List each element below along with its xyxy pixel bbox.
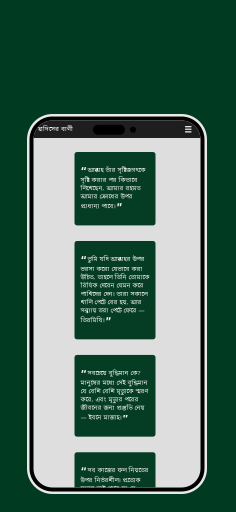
staticText: “ আল্লাহ তাঁর সৃষ্টিজগৎকে সৃষ্টি করার পর…	[80, 165, 145, 212]
button[interactable]: Menu	[183, 124, 193, 134]
staticText: “ সব কাজের ফল নিয়তের উপর নির্ভরশীল। প্র…	[80, 465, 148, 504]
staticText: “ তুমি যদি আল্লাহর উপর ভরসা করো যেভাবে ক…	[80, 254, 149, 326]
staticText: হাদিসের বাণী	[38, 125, 73, 133]
staticText: “ সবচেয়ে বুদ্ধিমান কে? মানুষের মধ্যে সে…	[80, 368, 148, 424]
